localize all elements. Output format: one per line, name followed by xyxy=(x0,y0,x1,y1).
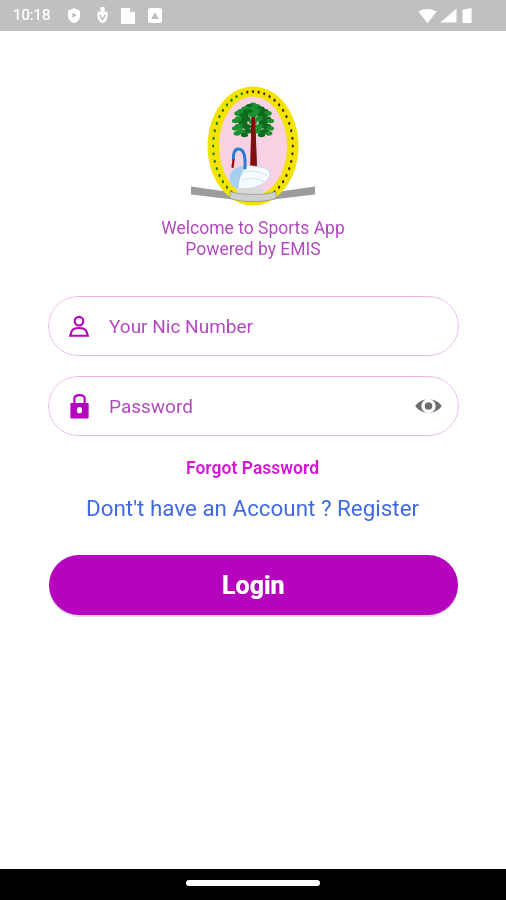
button[interactable]: Forgot Password xyxy=(178,452,328,485)
staticText: Dont't have an Account ? Register xyxy=(86,495,420,521)
button[interactable]: Login xyxy=(49,555,458,615)
button[interactable]: Dont't have an Account ? Register xyxy=(78,490,428,526)
staticText: Login xyxy=(222,571,285,600)
button[interactable]: Your Nic Number xyxy=(48,296,459,356)
staticText: 10:18 xyxy=(13,6,51,24)
button[interactable]: Show password xyxy=(406,384,450,428)
staticText: Forgot Password xyxy=(186,458,320,479)
staticText: Password xyxy=(109,395,193,417)
staticText: Powered by EMIS xyxy=(185,239,321,260)
button[interactable]: Password xyxy=(48,376,459,436)
staticText: Welcome to Sports App xyxy=(161,218,345,239)
staticText: Your Nic Number xyxy=(109,315,253,337)
